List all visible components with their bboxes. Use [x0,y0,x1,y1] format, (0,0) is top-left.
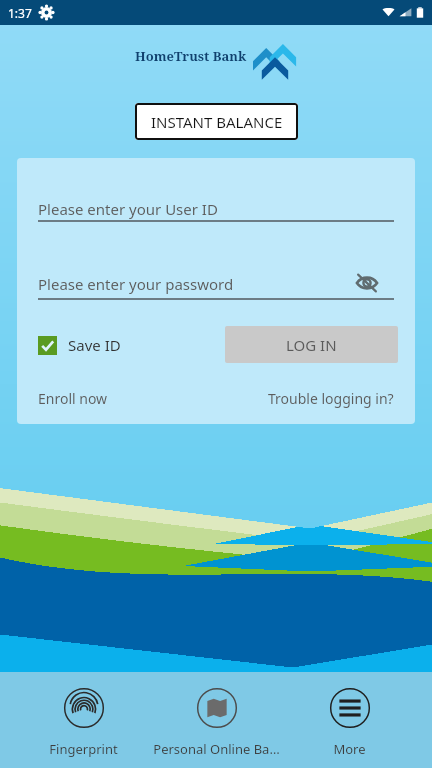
staticText: Please enter your User ID [38,199,218,219]
staticText: Please enter your password [38,274,234,294]
button[interactable]: Enroll now [38,389,108,408]
button[interactable]: Save ID [38,330,121,360]
button[interactable]: Trouble logging in? [268,389,394,408]
button[interactable]: INSTANT BALANCE [135,103,298,140]
staticText: Fingerprint [49,740,118,758]
staticText: INSTANT BALANCE [151,112,283,132]
staticText: Save ID [68,335,121,355]
staticText: More [333,740,366,758]
staticText: LOG IN [286,335,337,355]
staticText: Personal Online Ban... [150,740,283,758]
staticText: 1:37 [8,5,32,21]
button[interactable]: More [283,672,416,768]
button[interactable]: Show password [355,271,379,295]
button[interactable]: LOG IN [225,326,398,363]
button[interactable]: Personal Online Ban... [150,672,283,768]
staticText: HomeTrust Bank [135,47,247,65]
button[interactable]: Fingerprint [17,672,150,768]
